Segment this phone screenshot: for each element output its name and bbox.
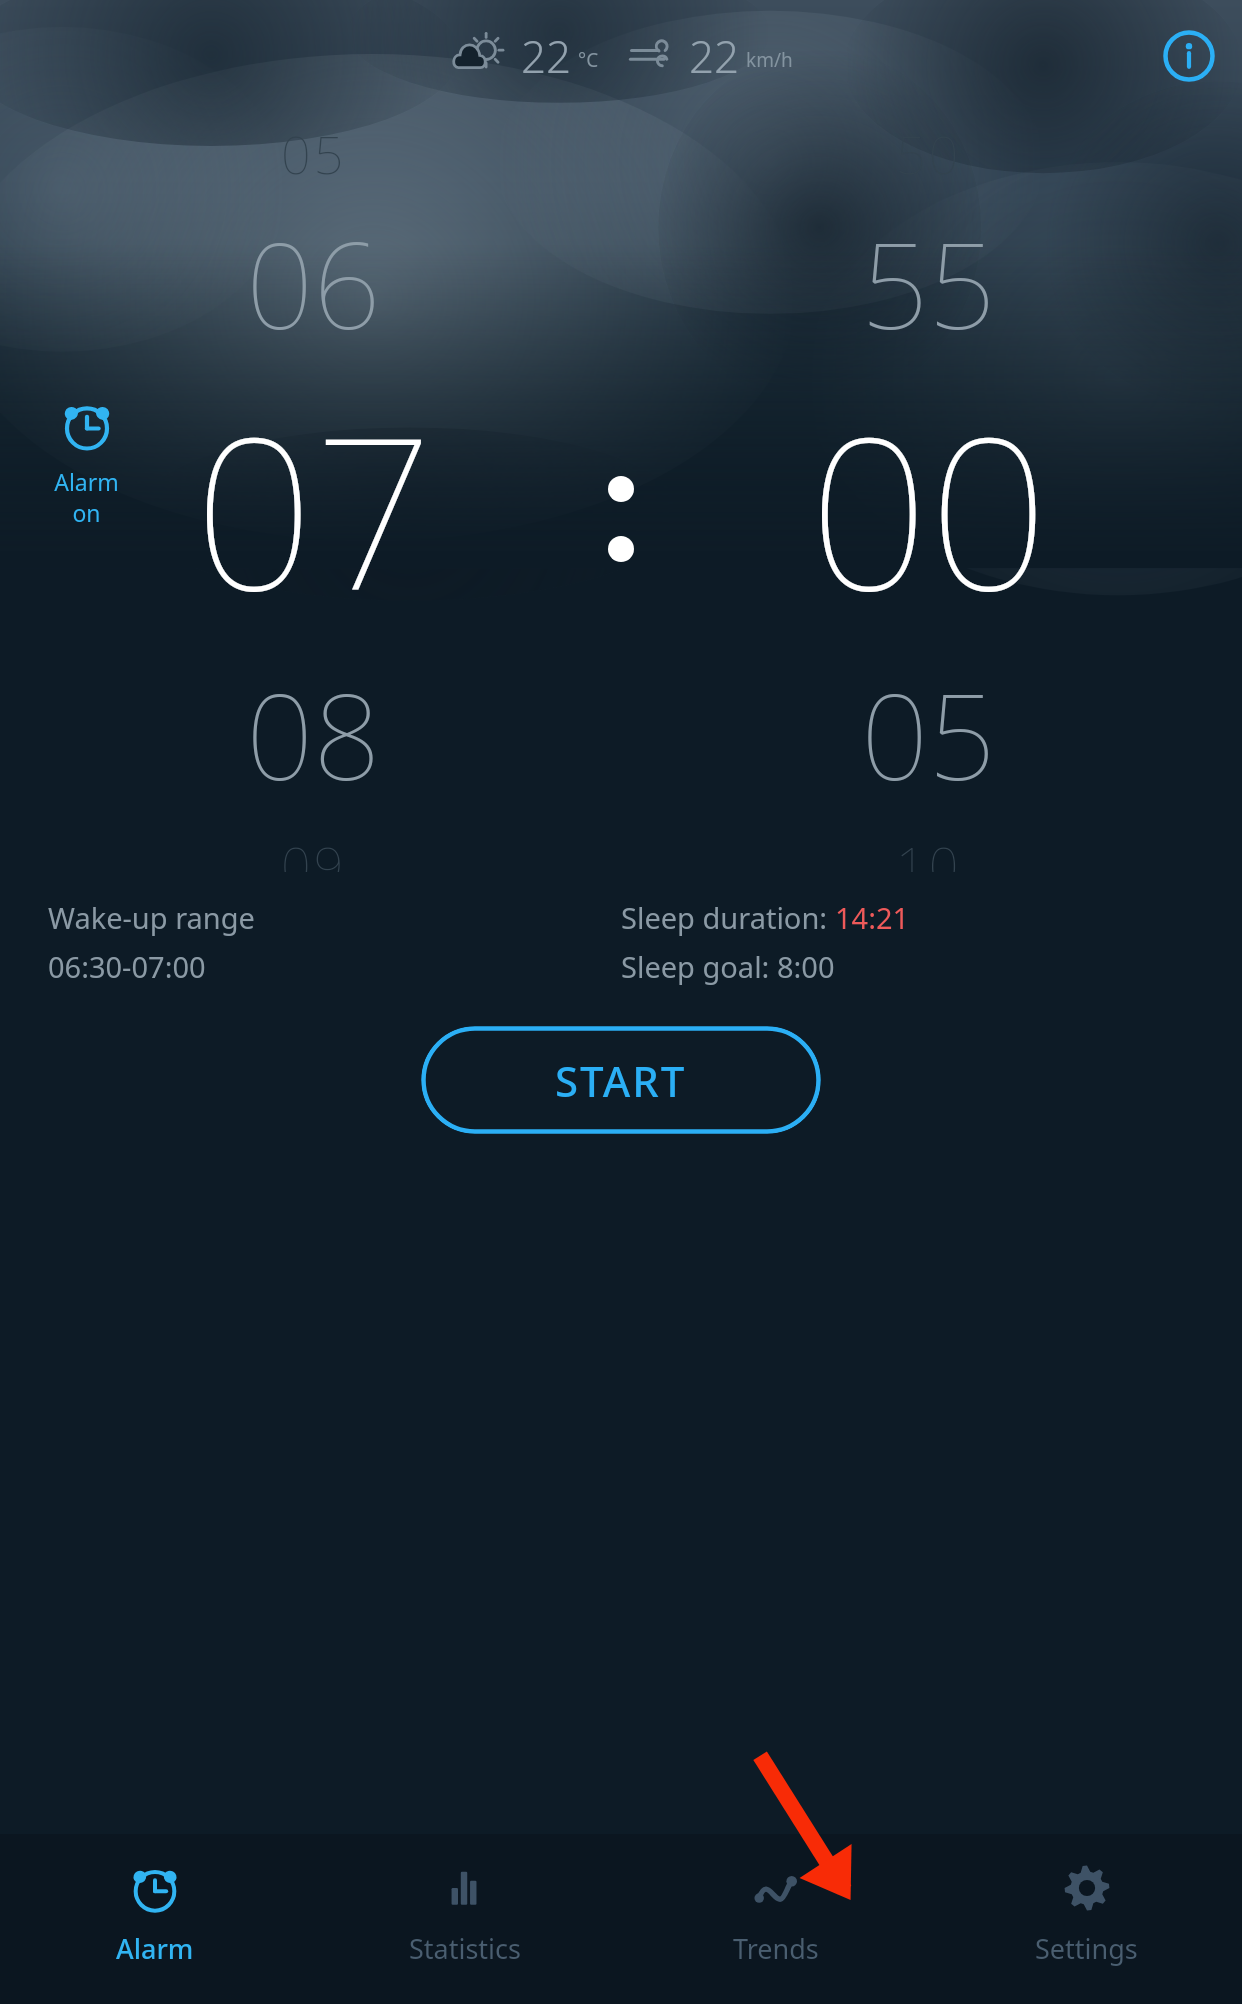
staticText: START xyxy=(555,1052,687,1109)
staticText: Alarm xyxy=(116,1930,194,1967)
staticText: 22 xyxy=(689,26,740,86)
staticText: km/h xyxy=(746,47,793,73)
staticText: 05 xyxy=(861,654,996,815)
button[interactable]: Statistics xyxy=(310,1834,620,2004)
staticText: Sleep goal: 8:00 xyxy=(621,947,835,986)
staticText: 08 xyxy=(246,654,381,815)
button[interactable]: START xyxy=(421,1026,821,1134)
staticText: 05 xyxy=(281,118,347,189)
staticText: Settings xyxy=(1035,1930,1138,1967)
staticText: Trends xyxy=(733,1930,819,1967)
staticText: 09 xyxy=(281,829,347,872)
staticText: °C xyxy=(578,47,599,73)
staticText: 06:30-07:00 xyxy=(48,947,206,986)
staticText: 55 xyxy=(861,203,996,364)
button[interactable]: Settings xyxy=(931,1834,1242,2004)
staticText: 22 xyxy=(521,26,572,86)
staticText: 07 xyxy=(194,366,434,652)
staticText: on xyxy=(72,497,101,528)
button[interactable]: Info xyxy=(1160,27,1218,85)
button[interactable]: 50 xyxy=(615,112,1242,872)
button[interactable]: Alarm xyxy=(46,388,127,536)
button[interactable]: Alarm xyxy=(0,1834,310,2004)
button[interactable]: Trends xyxy=(620,1834,931,2004)
staticText: 06 xyxy=(246,203,381,364)
button[interactable]: 05 xyxy=(0,112,627,872)
staticText: Alarm xyxy=(54,466,119,497)
staticText: 00 xyxy=(809,366,1049,652)
staticText: Sleep duration: xyxy=(621,898,835,937)
staticText: Statistics xyxy=(409,1930,521,1967)
staticText: 10 xyxy=(896,829,962,872)
staticText: Wake-up range xyxy=(48,898,255,937)
staticText: 14:21 xyxy=(835,898,910,937)
